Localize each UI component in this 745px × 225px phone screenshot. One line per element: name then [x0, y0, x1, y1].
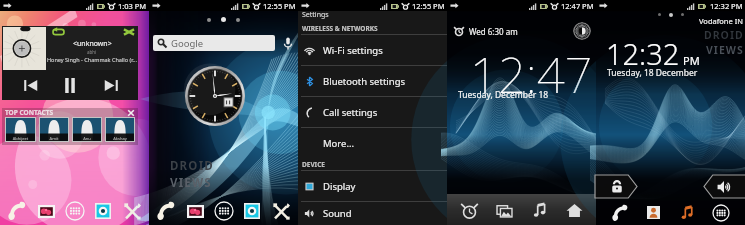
staticText: TOP CONTACTS: [5, 108, 54, 117]
button[interactable]: Phone: [609, 202, 630, 223]
staticText: abhi: [87, 49, 97, 55]
button[interactable]: Pause: [57, 72, 83, 98]
button[interactable]: <unknown>: [2, 26, 138, 100]
button[interactable]: Messaging: [184, 200, 206, 222]
button[interactable]: Apps: [63, 199, 86, 222]
button[interactable]: Apps: [710, 202, 732, 224]
staticText: DEVICE: [302, 160, 325, 169]
button[interactable]: Music: [676, 202, 697, 223]
staticText: Settings: [302, 10, 329, 20]
staticText: Amit: [39, 136, 69, 141]
button[interactable]: Voice search: [280, 36, 295, 51]
staticText: Vodafone IN: [699, 16, 743, 26]
staticText: Tuesday, 18 December: [607, 67, 698, 79]
button[interactable]: Unlock: [597, 175, 637, 198]
button[interactable]: Contacts: [643, 202, 664, 223]
button[interactable]: Next: [98, 72, 124, 98]
button[interactable]: Amit: [39, 117, 69, 142]
button[interactable]: Anu: [72, 117, 102, 142]
button[interactable]: Settings: [270, 200, 292, 222]
button[interactable]: More...: [298, 127, 447, 158]
staticText: Wi-Fi settings: [323, 44, 383, 57]
staticText: 12:32 PM: [710, 1, 743, 11]
staticText: Google: [171, 37, 204, 50]
button[interactable]: Abhijeet: [5, 117, 36, 142]
staticText: Akshay: [105, 136, 135, 141]
staticText: DROID: [170, 158, 214, 174]
button[interactable]: Display: [298, 170, 447, 201]
staticText: Anu: [72, 136, 102, 141]
button[interactable]: Alarm: [456, 197, 482, 223]
button[interactable]: Phone: [155, 200, 177, 222]
button[interactable]: Apps: [212, 199, 235, 222]
button[interactable]: TOP CONTACTS: [2, 108, 138, 145]
staticText: Bluetooth settings: [323, 75, 406, 88]
staticText: VIEWS: [706, 43, 744, 57]
button[interactable]: Sound: [298, 201, 447, 225]
staticText: DROID: [704, 28, 744, 42]
button[interactable]: Akshay: [105, 117, 135, 142]
staticText: Display: [323, 180, 356, 193]
staticText: More...: [323, 137, 355, 150]
staticText: 12:47: [470, 41, 593, 108]
staticText: 12:32: [606, 34, 680, 73]
button[interactable]: Bluetooth settings: [298, 65, 447, 96]
staticText: VIEWS: [170, 175, 212, 191]
button[interactable]: Wi-Fi settings: [298, 34, 447, 65]
staticText: 12:55 PM: [263, 1, 296, 11]
button[interactable]: Settings: [121, 200, 143, 222]
staticText: WIRELESS & NETWORKS: [302, 24, 378, 33]
button[interactable]: Google: [157, 35, 271, 51]
button[interactable]: Messaging: [35, 200, 57, 222]
button[interactable]: Camera: [92, 200, 114, 222]
button[interactable]: Gallery: [491, 197, 517, 223]
staticText: 1:03 PM: [118, 1, 147, 11]
button[interactable]: Call settings: [298, 96, 447, 127]
button[interactable]: Sound: [704, 175, 744, 198]
button[interactable]: Camera: [241, 200, 263, 222]
staticText: 12:47 PM: [561, 1, 594, 11]
button[interactable]: Home: [561, 197, 587, 223]
button[interactable]: Phone: [6, 200, 28, 222]
staticText: <unknown>: [73, 39, 112, 49]
staticText: PM: [683, 53, 700, 68]
staticText: Sound: [323, 207, 352, 220]
button[interactable]: Music: [526, 197, 552, 223]
staticText: Wed 6:30 am: [469, 26, 518, 37]
button[interactable]: Clock: [185, 66, 245, 126]
button[interactable]: Previous: [17, 72, 43, 98]
button[interactable]: Sound toggle: [573, 22, 591, 40]
staticText: Honey Singh - Chammak Challo (r...: [47, 56, 137, 63]
staticText: Tuesday, December 18: [458, 89, 549, 101]
staticText: Call settings: [323, 106, 378, 119]
staticText: 12:55 PM: [412, 1, 445, 11]
staticText: Abhijeet: [5, 136, 36, 141]
